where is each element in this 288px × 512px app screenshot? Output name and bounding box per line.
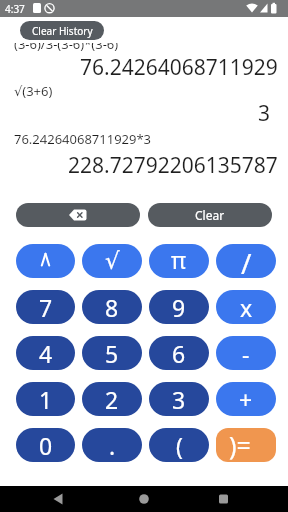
staticText: √(3+6) <box>14 82 53 100</box>
staticText: Clear History <box>32 24 93 38</box>
button[interactable]: - <box>216 336 276 370</box>
staticText: 1 <box>39 384 53 415</box>
staticText: 8 <box>105 292 119 323</box>
staticText: . <box>109 430 116 461</box>
staticText: Clear <box>195 207 225 223</box>
button[interactable]: x <box>216 290 276 324</box>
button[interactable] <box>192 486 288 512</box>
staticText: 6 <box>172 338 186 369</box>
button[interactable]: √ <box>82 244 142 278</box>
staticText: 7 <box>39 292 53 323</box>
button[interactable]: ( <box>149 428 209 462</box>
staticText: - <box>242 338 250 369</box>
button[interactable]: π <box>149 244 209 278</box>
button[interactable]: 9 <box>149 290 209 324</box>
button[interactable]: 2 <box>82 382 142 416</box>
button[interactable]: 5 <box>82 336 142 370</box>
staticText: 2 <box>105 384 119 415</box>
staticText: 76.24264068711929*3 <box>14 130 152 148</box>
staticText: ( <box>176 430 183 461</box>
button[interactable] <box>0 486 96 512</box>
button[interactable]: )= <box>216 428 276 462</box>
staticText: π <box>171 244 187 275</box>
staticText: 4 <box>39 338 53 369</box>
staticText: )= <box>229 428 251 462</box>
staticText: 4:37 <box>5 2 25 16</box>
button[interactable]: 0 <box>16 428 75 462</box>
button[interactable]: / <box>216 244 276 278</box>
staticText: 9 <box>172 292 186 323</box>
staticText: 228.72792206135787 <box>68 151 278 180</box>
staticText: √ <box>105 248 120 275</box>
button[interactable] <box>16 203 140 227</box>
staticText: 3 <box>172 384 186 415</box>
button[interactable]: 8 <box>82 290 142 324</box>
button[interactable]: 4 <box>16 336 75 370</box>
staticText: x <box>240 292 253 323</box>
button[interactable]: 1 <box>16 382 75 416</box>
staticText: 0 <box>39 430 53 461</box>
staticText: / <box>241 244 252 278</box>
button[interactable]: Clear <box>148 203 272 227</box>
button[interactable]: 7 <box>16 290 75 324</box>
button[interactable] <box>96 486 192 512</box>
button[interactable] <box>16 244 75 278</box>
staticText: + <box>239 384 253 415</box>
staticText: (3-6)/3-(3-6)*(3-6) <box>14 43 119 53</box>
staticText: 5 <box>105 338 119 369</box>
button[interactable]: . <box>82 428 142 462</box>
button[interactable]: + <box>216 382 276 416</box>
staticText: 3 <box>258 99 271 128</box>
button[interactable]: 3 <box>149 382 209 416</box>
button[interactable]: Clear History <box>20 21 104 40</box>
button[interactable]: 6 <box>149 336 209 370</box>
staticText: 76.24264068711929 <box>80 53 278 82</box>
